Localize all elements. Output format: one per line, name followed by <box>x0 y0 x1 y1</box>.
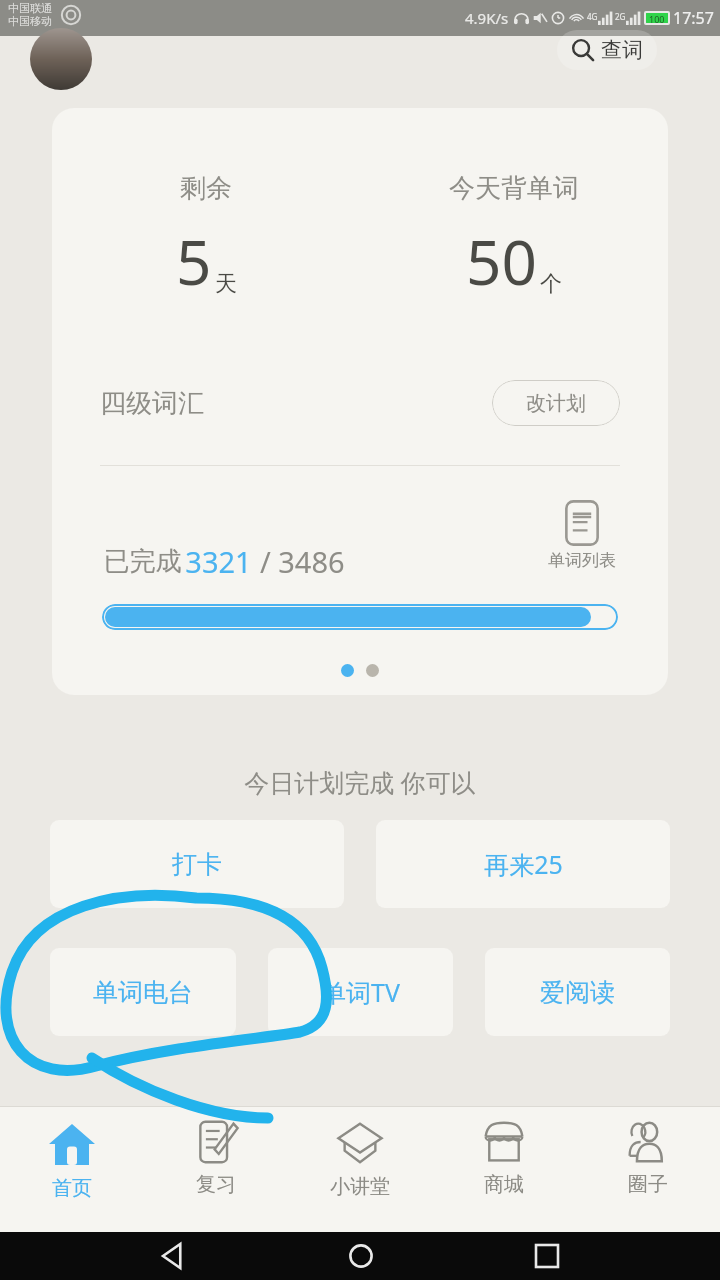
button[interactable]: 打卡 <box>50 820 344 908</box>
staticText: 17:57 <box>673 7 714 29</box>
staticText: 圈子 <box>628 1172 668 1197</box>
staticText: 5 <box>176 219 212 303</box>
staticText: 4.9K/s <box>465 8 509 28</box>
button[interactable]: 圈子 <box>576 1107 720 1232</box>
staticText: 打卡 <box>172 849 222 880</box>
staticText: 今日计划完成 你可以 <box>244 765 476 799</box>
staticText: 100 <box>649 13 665 23</box>
button[interactable]: 再来25 <box>376 820 670 908</box>
button[interactable]: 爱阅读 <box>485 948 670 1036</box>
staticText: 中国移动 <box>8 14 52 28</box>
staticText: 天 <box>215 270 237 298</box>
staticText: 3321 <box>185 542 252 581</box>
staticText: 首页 <box>52 1176 92 1201</box>
staticText: 50 <box>466 219 537 303</box>
staticText: 个 <box>540 270 562 298</box>
staticText: 剩余 <box>180 172 232 205</box>
staticText: 爱阅读 <box>540 977 615 1008</box>
button[interactable]: 查词 <box>557 30 657 70</box>
button[interactable]: 单词电台 <box>50 948 236 1036</box>
button[interactable]: 单词列表 <box>544 500 620 571</box>
staticText: 单词电台 <box>93 977 193 1008</box>
button[interactable]: Profile <box>30 28 92 90</box>
staticText: 复习 <box>196 1172 236 1197</box>
staticText: 查词 <box>601 37 643 63</box>
staticText: / 3486 <box>252 542 345 581</box>
button[interactable]: 首页 <box>0 1107 144 1232</box>
button[interactable]: 复习 <box>144 1107 288 1232</box>
staticText: 单词TV <box>321 975 400 1009</box>
staticText: 今天背单词 <box>449 172 579 205</box>
button[interactable]: 小讲堂 <box>288 1107 432 1232</box>
button[interactable]: Back <box>163 1244 187 1268</box>
staticText: 2G <box>615 11 626 22</box>
button[interactable]: Home <box>349 1244 373 1268</box>
staticText: 四级词汇 <box>100 387 204 420</box>
staticText: 已完成 <box>100 542 185 578</box>
button[interactable]: 改计划 <box>492 380 620 426</box>
button[interactable]: 商城 <box>432 1107 576 1232</box>
staticText: 改计划 <box>526 391 586 416</box>
staticText: 再来25 <box>484 847 563 881</box>
staticText: 中国联通 <box>8 1 52 15</box>
button[interactable]: 单词TV <box>268 948 453 1036</box>
button[interactable]: Recents <box>536 1245 558 1267</box>
staticText: 商城 <box>484 1172 524 1197</box>
staticText: 单词列表 <box>548 550 616 571</box>
staticText: 小讲堂 <box>330 1174 390 1199</box>
staticText: 4G <box>587 11 598 22</box>
